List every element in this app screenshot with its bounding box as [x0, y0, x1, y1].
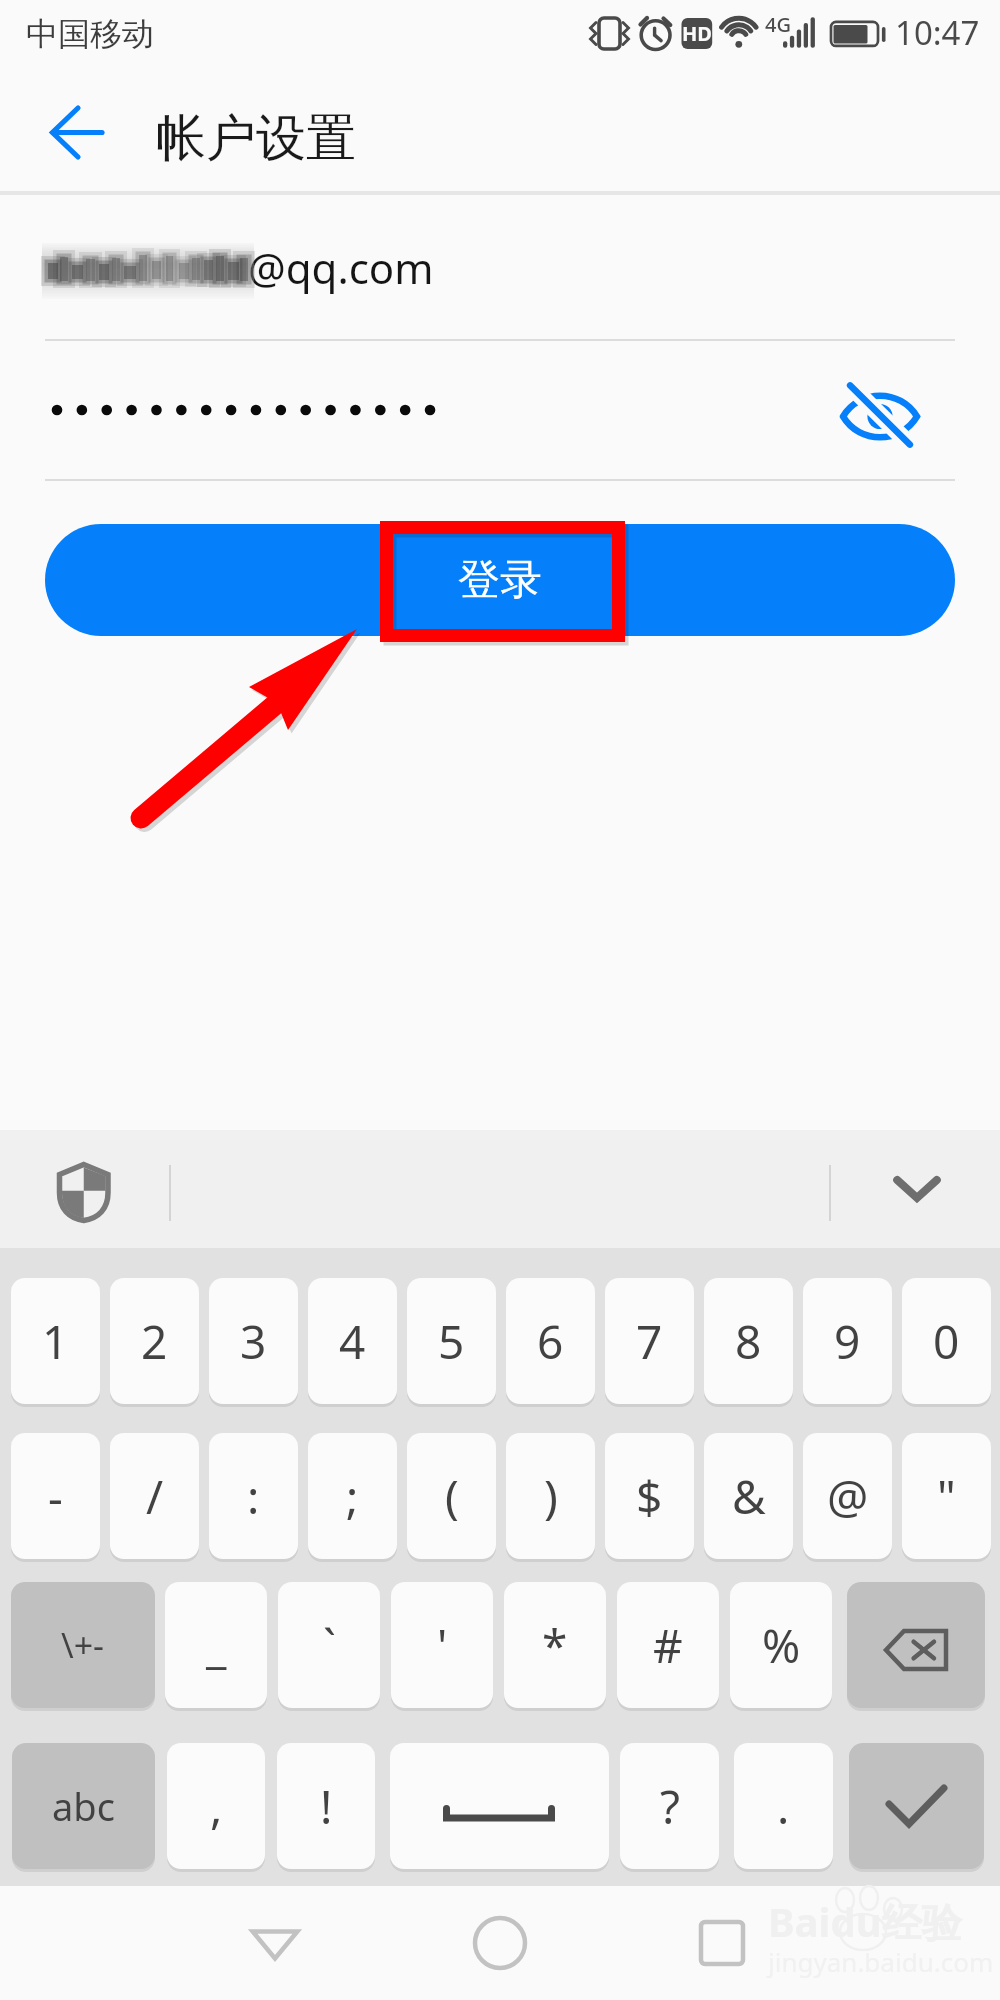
button[interactable]: , [167, 1743, 265, 1869]
button[interactable]: 5 [407, 1278, 496, 1404]
button[interactable]: Hide keyboard [872, 1150, 962, 1228]
button[interactable]: 4 [308, 1278, 397, 1404]
staticText: , [210, 1775, 223, 1838]
staticText: - [48, 1465, 63, 1528]
button[interactable]: . [734, 1743, 833, 1869]
button[interactable]: % [730, 1582, 832, 1708]
staticText: 中国移动 [26, 14, 154, 54]
button[interactable]: 2 [110, 1278, 199, 1404]
staticText: : [247, 1465, 260, 1528]
button[interactable]: Show password [830, 365, 930, 465]
button[interactable]: / [110, 1433, 199, 1559]
staticText: ` [323, 1614, 336, 1677]
staticText: Baidu经验 [768, 1894, 962, 1949]
staticText: 7 [636, 1310, 663, 1373]
button[interactable]: ; [308, 1433, 397, 1559]
button[interactable]: $ [605, 1433, 694, 1559]
staticText: 0 [933, 1310, 960, 1373]
button[interactable]: ' [391, 1582, 493, 1708]
staticText: ( [445, 1465, 459, 1528]
button[interactable]: _ [165, 1582, 267, 1708]
staticText: / [146, 1465, 164, 1528]
staticText: 10:47 [895, 10, 980, 55]
staticText: ) [544, 1465, 558, 1528]
staticText: 8 [735, 1310, 762, 1373]
staticText: * [542, 1614, 568, 1677]
button[interactable]: * [504, 1582, 606, 1708]
button[interactable]: " [902, 1433, 991, 1559]
button[interactable]: 8 [704, 1278, 793, 1404]
button[interactable]: & [704, 1433, 793, 1559]
button[interactable]: 登录 [45, 524, 955, 636]
staticText: HD [682, 20, 712, 47]
button[interactable]: Home [440, 1886, 560, 2000]
button[interactable]: ` [278, 1582, 380, 1708]
button[interactable]: - [11, 1433, 100, 1559]
staticText: 2 [141, 1310, 168, 1373]
button[interactable]: ! [277, 1743, 375, 1869]
button[interactable]: 3 [209, 1278, 298, 1404]
button[interactable]: \+- [11, 1582, 155, 1708]
staticText: 帐户设置 [156, 107, 356, 170]
button[interactable]: : [209, 1433, 298, 1559]
staticText: 4 [339, 1310, 366, 1373]
button[interactable]: 1 [11, 1278, 100, 1404]
staticText: 1 [42, 1310, 69, 1373]
button[interactable]: ( [407, 1433, 496, 1559]
staticText: 登录 [458, 554, 542, 607]
button[interactable]: Back [215, 1886, 335, 2000]
staticText: & [732, 1465, 766, 1528]
staticText: . [777, 1775, 790, 1838]
staticText: 9 [834, 1310, 861, 1373]
staticText: 6 [537, 1310, 564, 1373]
button[interactable]: Recents [662, 1886, 782, 2000]
button[interactable]: Security [45, 1152, 123, 1230]
staticText: ; [346, 1465, 359, 1528]
staticText: \+- [61, 1622, 105, 1668]
staticText: ! [320, 1775, 333, 1838]
staticText: ' [437, 1614, 448, 1677]
staticText: @ [827, 1465, 869, 1528]
button[interactable]: Enter [849, 1743, 984, 1869]
button[interactable]: Space [390, 1743, 609, 1869]
button[interactable]: 0 [902, 1278, 991, 1404]
staticText: 3 [240, 1310, 267, 1373]
staticText: " [937, 1465, 956, 1528]
staticText: @qq.com [248, 239, 434, 296]
button[interactable]: @ [803, 1433, 892, 1559]
button[interactable]: ) [506, 1433, 595, 1559]
staticText: 4G [765, 11, 791, 38]
button[interactable]: # [617, 1582, 719, 1708]
button[interactable]: 7 [605, 1278, 694, 1404]
button[interactable]: abc [12, 1743, 155, 1869]
staticText: _ [206, 1614, 227, 1677]
staticText: # [653, 1614, 683, 1677]
button[interactable]: 6 [506, 1278, 595, 1404]
staticText: jingyan.baidu.com [768, 1944, 994, 1979]
button[interactable]: Backspace [847, 1582, 985, 1708]
staticText: ? [660, 1775, 680, 1838]
button[interactable]: 9 [803, 1278, 892, 1404]
staticText: $ [636, 1465, 663, 1528]
button[interactable]: Back [22, 87, 132, 197]
button[interactable]: ? [620, 1743, 719, 1869]
staticText: abc [52, 1780, 115, 1832]
staticText: % [762, 1614, 801, 1677]
staticText: 5 [438, 1310, 465, 1373]
